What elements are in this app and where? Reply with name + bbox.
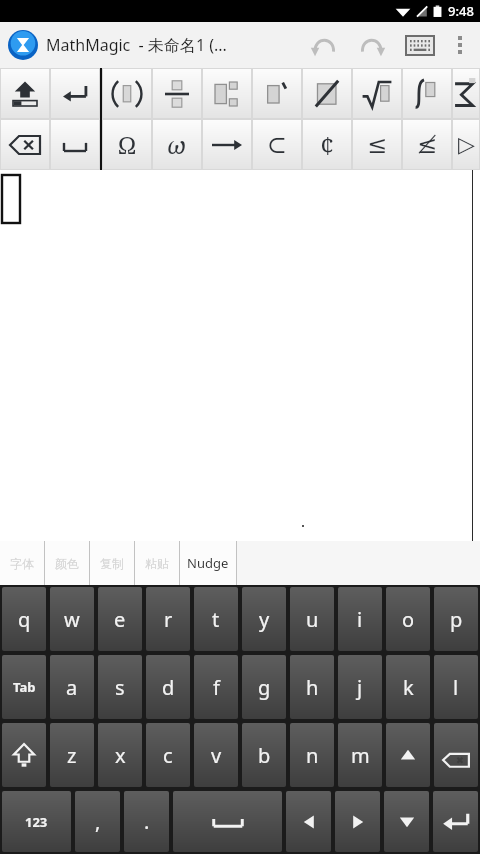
- staticText: b: [258, 742, 271, 769]
- staticText: g: [258, 674, 271, 701]
- button[interactable]: Prime: [253, 69, 301, 118]
- button[interactable]: o: [386, 587, 430, 651]
- button[interactable]: Insert: [1, 69, 49, 118]
- staticText: Tab: [13, 678, 36, 696]
- button[interactable]: 颜色: [45, 541, 89, 585]
- staticText: y: [259, 606, 270, 633]
- staticText: m: [351, 742, 370, 769]
- button[interactable]: h: [290, 655, 334, 719]
- staticText: q: [18, 606, 31, 633]
- button[interactable]: Square root: [353, 69, 401, 118]
- button[interactable]: f: [194, 655, 238, 719]
- staticText: ▷: [458, 132, 475, 158]
- staticText: MathMagic - 未命名1 (...: [46, 34, 227, 56]
- button[interactable]: Arrow: [203, 120, 251, 169]
- button[interactable]: s: [98, 655, 142, 719]
- button[interactable]: Left arrow: [286, 791, 331, 852]
- button[interactable]: t: [194, 587, 238, 651]
- button[interactable]: Equation cursor: [2, 175, 20, 223]
- staticText: ⊂: [267, 131, 288, 159]
- staticText: ,: [95, 808, 101, 835]
- button[interactable]: Slash: [303, 69, 351, 118]
- button[interactable]: Space: [173, 791, 282, 852]
- staticText: i: [357, 606, 363, 633]
- button[interactable]: w: [50, 587, 94, 651]
- button[interactable]: k: [386, 655, 430, 719]
- button[interactable]: Subscript: [203, 69, 251, 118]
- staticText: k: [403, 674, 414, 701]
- staticText: 123: [25, 813, 48, 831]
- button[interactable]: d: [146, 655, 190, 719]
- staticText: a: [66, 674, 78, 701]
- button[interactable]: Down arrow: [384, 791, 429, 852]
- staticText: l: [453, 674, 459, 701]
- button[interactable]: Fraction: [153, 69, 201, 118]
- staticText: ω: [167, 128, 187, 161]
- button[interactable]: More symbols: [453, 120, 479, 169]
- button[interactable]: Undo: [300, 22, 348, 68]
- button[interactable]: p: [434, 587, 478, 651]
- button[interactable]: i: [338, 587, 382, 651]
- button[interactable]: g: [242, 655, 286, 719]
- button[interactable]: j: [338, 655, 382, 719]
- staticText: ¢: [320, 128, 334, 162]
- button[interactable]: a: [50, 655, 94, 719]
- staticText: d: [162, 674, 175, 701]
- staticText: 粘贴: [145, 556, 169, 571]
- button[interactable]: Parentheses: [103, 69, 151, 118]
- button[interactable]: Redo: [348, 22, 396, 68]
- button[interactable]: .: [124, 791, 169, 852]
- button[interactable]: n: [290, 723, 334, 787]
- button[interactable]: Delete: [434, 723, 478, 787]
- button[interactable]: m: [338, 723, 382, 787]
- button[interactable]: Shift: [2, 723, 46, 787]
- staticText: w: [64, 606, 80, 633]
- button[interactable]: New line: [51, 69, 99, 118]
- staticText: r: [164, 606, 173, 633]
- staticText: c: [163, 742, 173, 769]
- button[interactable]: omega: [153, 120, 201, 169]
- staticText: Nudge: [187, 554, 229, 572]
- button[interactable]: Space: [51, 120, 99, 169]
- button[interactable]: 字体: [0, 541, 44, 585]
- button[interactable]: Backspace: [1, 120, 49, 169]
- button[interactable]: ,: [75, 791, 120, 852]
- button[interactable]: More options: [444, 22, 476, 68]
- staticText: ≤: [367, 131, 388, 159]
- button[interactable]: e: [98, 587, 142, 651]
- button[interactable]: Integral: [403, 69, 451, 118]
- staticText: Ω: [118, 128, 137, 161]
- button[interactable]: Not less: [403, 120, 451, 169]
- button[interactable]: Enter: [433, 791, 478, 852]
- button[interactable]: Nudge: [180, 541, 236, 585]
- button[interactable]: q: [2, 587, 46, 651]
- staticText: h: [306, 674, 319, 701]
- staticText: j: [357, 674, 363, 701]
- button[interactable]: Less or equal: [353, 120, 401, 169]
- button[interactable]: l: [434, 655, 478, 719]
- button[interactable]: Not divides: [303, 120, 351, 169]
- staticText: o: [402, 606, 415, 633]
- staticText: 9:48: [448, 2, 474, 20]
- button[interactable]: z: [50, 723, 94, 787]
- button[interactable]: b: [242, 723, 286, 787]
- button[interactable]: Tab: [2, 655, 46, 719]
- button[interactable]: Subset: [253, 120, 301, 169]
- button[interactable]: 123: [2, 791, 71, 852]
- button[interactable]: Keyboard: [396, 22, 444, 68]
- button[interactable]: r: [146, 587, 190, 651]
- button[interactable]: c: [146, 723, 190, 787]
- button[interactable]: Omega: [103, 120, 151, 169]
- staticText: t: [212, 606, 220, 633]
- button[interactable]: v: [194, 723, 238, 787]
- button[interactable]: x: [98, 723, 142, 787]
- staticText: v: [211, 742, 222, 769]
- button[interactable]: Up arrow: [386, 723, 430, 787]
- button[interactable]: u: [290, 587, 334, 651]
- staticText: z: [67, 742, 77, 769]
- button[interactable]: Summation: [453, 69, 479, 118]
- button[interactable]: y: [242, 587, 286, 651]
- button[interactable]: 粘贴: [135, 541, 179, 585]
- button[interactable]: Right arrow: [335, 791, 380, 852]
- button[interactable]: 复制: [90, 541, 134, 585]
